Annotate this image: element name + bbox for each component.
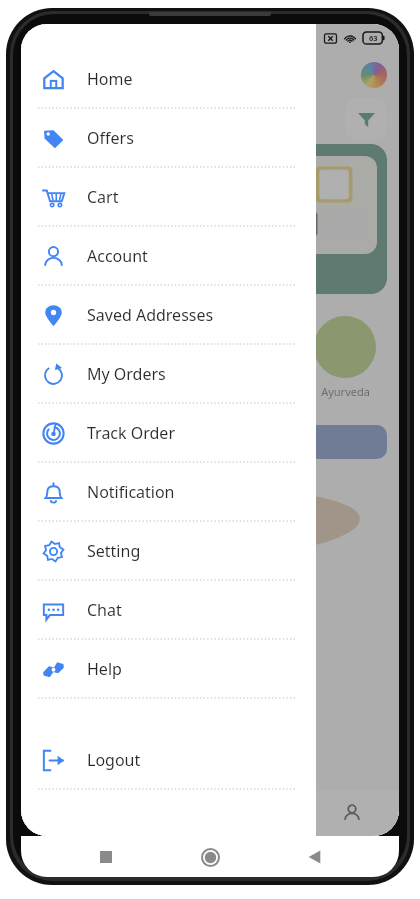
button[interactable]: Chat bbox=[21, 583, 316, 642]
button[interactable]: Help bbox=[21, 642, 316, 701]
button[interactable]: My Orders bbox=[21, 347, 316, 406]
staticText: Cart bbox=[87, 186, 119, 208]
staticText: Offers bbox=[87, 127, 134, 149]
staticText: GET THEM NOW bbox=[49, 256, 151, 274]
staticText: Saved Addresses bbox=[87, 304, 214, 326]
button[interactable]: Back bbox=[295, 837, 335, 877]
button[interactable]: Account bbox=[21, 229, 316, 288]
staticText: Setting bbox=[87, 540, 141, 562]
staticText: Chat bbox=[87, 599, 122, 621]
button[interactable]: GET THEM NOW bbox=[33, 144, 387, 294]
button[interactable]: Home bbox=[21, 52, 316, 111]
button[interactable] bbox=[224, 316, 286, 378]
button[interactable]: Filter bbox=[345, 98, 387, 140]
staticText: 63 bbox=[369, 33, 378, 43]
button[interactable]: Tab 3 bbox=[304, 790, 399, 836]
staticText: Out Of Stock bbox=[156, 507, 264, 530]
staticText: Help bbox=[87, 658, 122, 680]
staticText: Track Order bbox=[87, 422, 176, 444]
button[interactable]: Saved Addresses bbox=[21, 288, 316, 347]
button[interactable]: Tab 0 bbox=[21, 790, 115, 836]
button[interactable]: Setting bbox=[21, 524, 316, 583]
staticText: Home bbox=[87, 68, 133, 90]
staticText: My Orders bbox=[87, 363, 166, 385]
button[interactable]: Offers bbox=[21, 111, 316, 170]
button[interactable]: Recents bbox=[86, 837, 126, 877]
staticText: Notification bbox=[87, 481, 175, 503]
other: Theme bbox=[361, 62, 387, 88]
button[interactable] bbox=[314, 316, 376, 378]
button[interactable] bbox=[44, 316, 106, 378]
button[interactable]: Notification bbox=[21, 465, 316, 524]
button[interactable]: Cart bbox=[21, 170, 316, 229]
staticText: Medicine bbox=[52, 384, 99, 399]
button[interactable] bbox=[134, 316, 196, 378]
button[interactable]: Home bbox=[190, 837, 230, 877]
staticText: Ayurveda bbox=[321, 384, 370, 399]
staticText: Logout bbox=[87, 749, 141, 771]
staticText: FLAT 25% Off bbox=[162, 432, 259, 452]
button[interactable]: Logout bbox=[21, 733, 316, 792]
button[interactable]: Track Order bbox=[21, 406, 316, 465]
staticText: Account bbox=[87, 245, 148, 267]
